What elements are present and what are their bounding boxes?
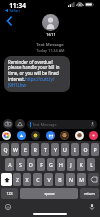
button[interactable]: App 3 [46, 131, 55, 140]
button[interactable]: Camera [3, 119, 13, 129]
button[interactable]: App 4 [60, 131, 69, 140]
staticText: Today 11:34 AM [36, 48, 65, 53]
button[interactable]: L [87, 158, 95, 171]
button[interactable]: Dictation [88, 203, 96, 211]
staticText: J [70, 161, 72, 168]
button[interactable]: Apps [15, 119, 25, 129]
staticText: T [44, 146, 47, 153]
button[interactable]: App 0 [2, 131, 11, 140]
button[interactable]: App 2 [31, 131, 40, 140]
button[interactable]: B [55, 173, 64, 186]
staticText: I [74, 146, 76, 153]
button[interactable]: F [37, 158, 45, 171]
staticText: Reminder of overdue!please handle your b… [8, 59, 66, 89]
staticText: Z [16, 176, 19, 183]
staticText: L [90, 161, 93, 168]
staticText: V [47, 176, 51, 183]
button[interactable]: Contact details [42, 14, 59, 38]
staticText: C [36, 176, 40, 183]
staticText: N [69, 176, 73, 183]
staticText: return [84, 191, 95, 196]
button[interactable]: Reminder of overdue!please handle your b… [4, 56, 70, 92]
button[interactable]: W [11, 143, 19, 156]
staticText: W [13, 146, 18, 153]
button[interactable]: D [27, 158, 35, 171]
staticText: G [49, 161, 53, 168]
staticText: Text Message [32, 122, 57, 127]
button[interactable]: Back to Safari [5, 8, 20, 13]
button[interactable]: App 1 [17, 131, 26, 140]
staticText: P [93, 146, 97, 153]
staticText: X [25, 176, 29, 183]
button[interactable]: J [67, 158, 75, 171]
staticText: 11:34 [9, 1, 26, 10]
button[interactable]: return [80, 188, 99, 199]
staticText: Safari [9, 8, 20, 13]
button[interactable]: P [91, 143, 99, 156]
button[interactable]: App 5 [75, 131, 84, 140]
button[interactable]: Z [13, 173, 21, 186]
staticText: O [83, 146, 88, 153]
button[interactable]: E [21, 143, 29, 156]
staticText: D [29, 161, 33, 168]
button[interactable]: O [81, 143, 89, 156]
button[interactable]: I [71, 143, 79, 156]
staticText: space [44, 191, 55, 196]
button[interactable]: Q [1, 143, 9, 156]
button[interactable]: A [5, 158, 14, 171]
button[interactable]: G [47, 158, 55, 171]
button[interactable]: R [31, 143, 39, 156]
button[interactable]: Text Message [27, 120, 97, 129]
button[interactable]: X [23, 173, 31, 186]
button[interactable]: Back [3, 15, 15, 27]
button[interactable]: Y [51, 143, 59, 156]
staticText: 1611 [46, 32, 56, 38]
staticText: M [79, 176, 84, 183]
staticText: H [59, 161, 63, 168]
button[interactable]: Backspace [88, 173, 99, 186]
button[interactable]: T [41, 143, 49, 156]
button[interactable]: N [66, 173, 75, 186]
button[interactable]: S [16, 158, 25, 171]
staticText: 123 [6, 191, 13, 196]
staticText: Y [54, 146, 57, 153]
staticText: A [8, 161, 12, 168]
button[interactable]: App 6 [89, 131, 98, 140]
staticText: Q [3, 146, 8, 153]
button[interactable]: M [77, 173, 86, 186]
staticText: U [63, 146, 67, 153]
button[interactable]: Shift [1, 173, 12, 186]
button[interactable]: K [77, 158, 85, 171]
staticText: E [24, 146, 27, 153]
button[interactable]: U [61, 143, 69, 156]
button[interactable]: space [20, 188, 78, 199]
staticText: R [33, 146, 37, 153]
button[interactable]: H [57, 158, 65, 171]
staticText: F [40, 161, 43, 168]
button[interactable]: 123 [1, 188, 18, 199]
staticText: B [58, 176, 62, 183]
button[interactable]: Emoji [4, 203, 12, 211]
button[interactable]: V [44, 173, 53, 186]
staticText: Text Message [36, 42, 64, 48]
staticText: K [79, 161, 83, 168]
button[interactable]: C [33, 173, 42, 186]
staticText: S [19, 161, 22, 168]
